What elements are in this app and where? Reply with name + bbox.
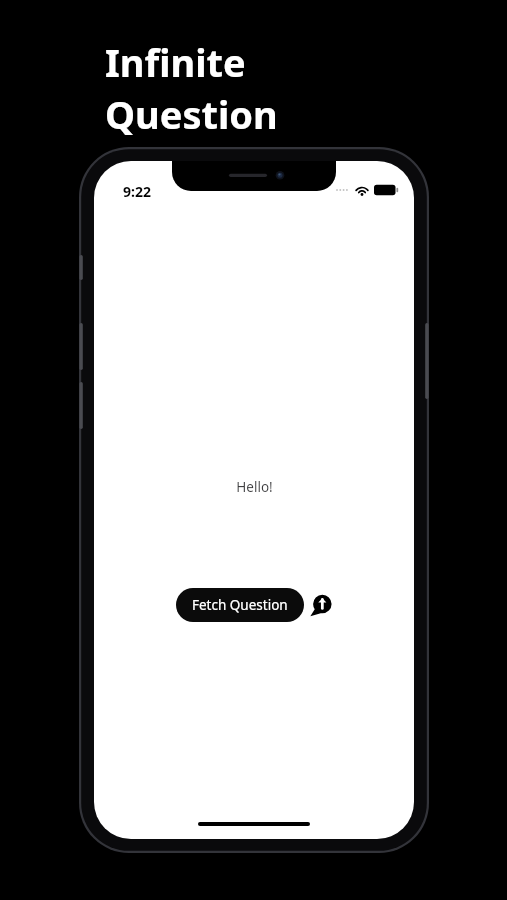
staticText: Hello!	[236, 478, 273, 496]
button[interactable]: Fetch Question	[176, 588, 304, 622]
staticText: Question	[105, 88, 278, 140]
staticText: 9:22	[123, 182, 151, 201]
button[interactable]: Send question	[311, 595, 332, 616]
staticText: Fetch Question	[192, 596, 288, 614]
staticText: Infinite	[105, 36, 246, 88]
